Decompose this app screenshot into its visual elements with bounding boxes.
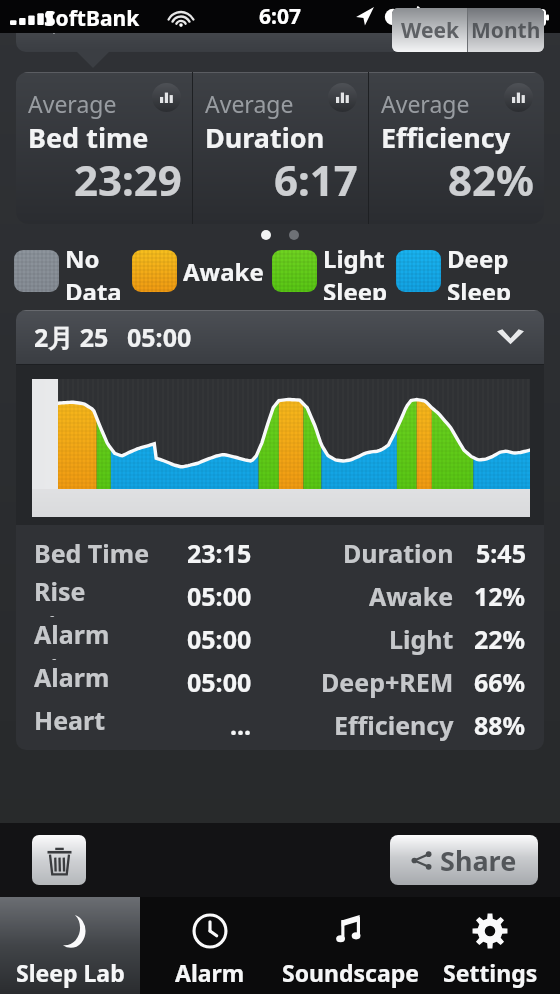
staticText: 100% [442,4,497,33]
button[interactable]: Show chart [504,83,533,112]
staticText: 88% [474,708,526,742]
staticText: Average [205,88,294,119]
staticText: 66% [474,665,526,699]
staticText: 22% [474,622,526,656]
button[interactable]: Alarm [140,897,280,994]
staticText: Efficiency [334,708,454,742]
staticText: 2月 18 - 24 [36,2,165,38]
staticText: Settings [443,957,538,988]
staticText: 12% [474,579,526,613]
button[interactable]: 2月 25 [16,310,544,364]
button[interactable]: Sleep Lab [0,897,140,994]
staticText: Sleep Lab [16,957,125,988]
button[interactable]: Show chart [152,83,181,112]
staticText: 6:07 [259,2,301,31]
staticText: Sleep [447,275,512,300]
staticText: 05:00 [127,320,192,354]
button[interactable]: 2月 18 - 24 [16,0,544,52]
staticText: Awake [369,579,454,613]
button[interactable]: Week [392,8,467,52]
staticText: Deep [447,242,509,275]
staticText: SoftBank [44,4,140,33]
staticText: 23:29 [74,151,182,208]
button[interactable]: Delete [32,835,86,885]
button[interactable]: Share [390,835,538,885]
staticText: Bed time [28,119,149,156]
staticText: Data [65,275,122,300]
staticText: Average [28,88,117,119]
button[interactable]: Show chart [328,83,357,112]
button[interactable]: Average [369,72,544,224]
staticText: Duration [343,536,454,570]
button[interactable]: Soundscape [280,897,420,994]
button[interactable]: Average [16,72,192,224]
staticText: Alarm Set [34,660,152,703]
staticText: Rise Time [34,574,152,617]
staticText: Alarm [175,957,245,988]
staticText: Light [389,622,454,656]
staticText: No [65,242,100,275]
staticText: Month [471,16,541,45]
staticText: 05:00 [187,579,252,613]
staticText: 23:15 [187,536,252,570]
staticText: Average [381,88,470,119]
staticText: Heart Rate [34,703,152,746]
staticText: Share [440,842,517,879]
staticText: 5:45 [476,536,526,570]
staticText: Soundscape [282,957,419,988]
staticText: Alarm Ring [34,617,152,660]
staticText: 05:00 [187,622,252,656]
staticText: Sleep [323,275,388,300]
staticText: Light [323,242,385,275]
staticText: Efficiency [381,119,511,156]
staticText: 82% [448,151,534,208]
staticText: ... [230,708,252,742]
other: Collapse [497,329,524,345]
staticText: 2月 25 [34,320,109,354]
button[interactable]: Average [193,72,368,224]
staticText: 05:00 [187,665,252,699]
staticText: Awake [183,255,264,288]
staticText: Week [401,16,459,45]
staticText: 6:17 [274,151,358,208]
staticText: Deep+REM [321,665,454,699]
button[interactable]: Month [468,8,544,52]
button[interactable]: Settings [420,897,560,994]
staticText: Bed Time [34,536,150,570]
staticText: Duration [205,119,325,156]
